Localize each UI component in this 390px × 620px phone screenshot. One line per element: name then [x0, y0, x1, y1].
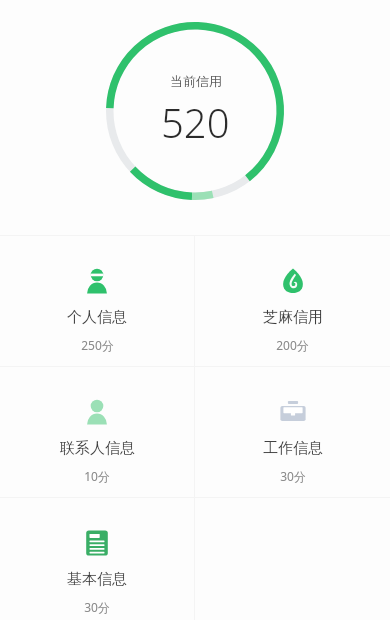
staticText: 200分 — [276, 337, 309, 353]
button[interactable]: 基本信息 — [0, 498, 194, 620]
button[interactable]: 工作信息 — [195, 367, 390, 497]
staticText: 10分 — [84, 468, 110, 484]
button[interactable]: 芝麻信用 — [195, 236, 390, 366]
staticText: 250分 — [81, 337, 114, 353]
staticText: 工作信息 — [263, 439, 323, 458]
button[interactable]: 个人信息 — [0, 236, 194, 366]
staticText: 30分 — [84, 599, 110, 615]
other: 个人信息 — [82, 266, 112, 296]
staticText: 当前信用 — [170, 73, 222, 89]
staticText: 520 — [161, 95, 230, 149]
staticText: 联系人信息 — [60, 439, 135, 458]
staticText: 基本信息 — [67, 570, 127, 589]
other: 工作信息 — [278, 397, 308, 427]
other: 基本信息 — [82, 528, 112, 558]
button[interactable]: 联系人信息 — [0, 367, 194, 497]
other: 芝麻信用 — [278, 266, 308, 296]
other: 联系人信息 — [82, 397, 112, 427]
staticText: 芝麻信用 — [263, 308, 323, 327]
staticText: 30分 — [280, 468, 306, 484]
staticText: 个人信息 — [67, 308, 127, 327]
